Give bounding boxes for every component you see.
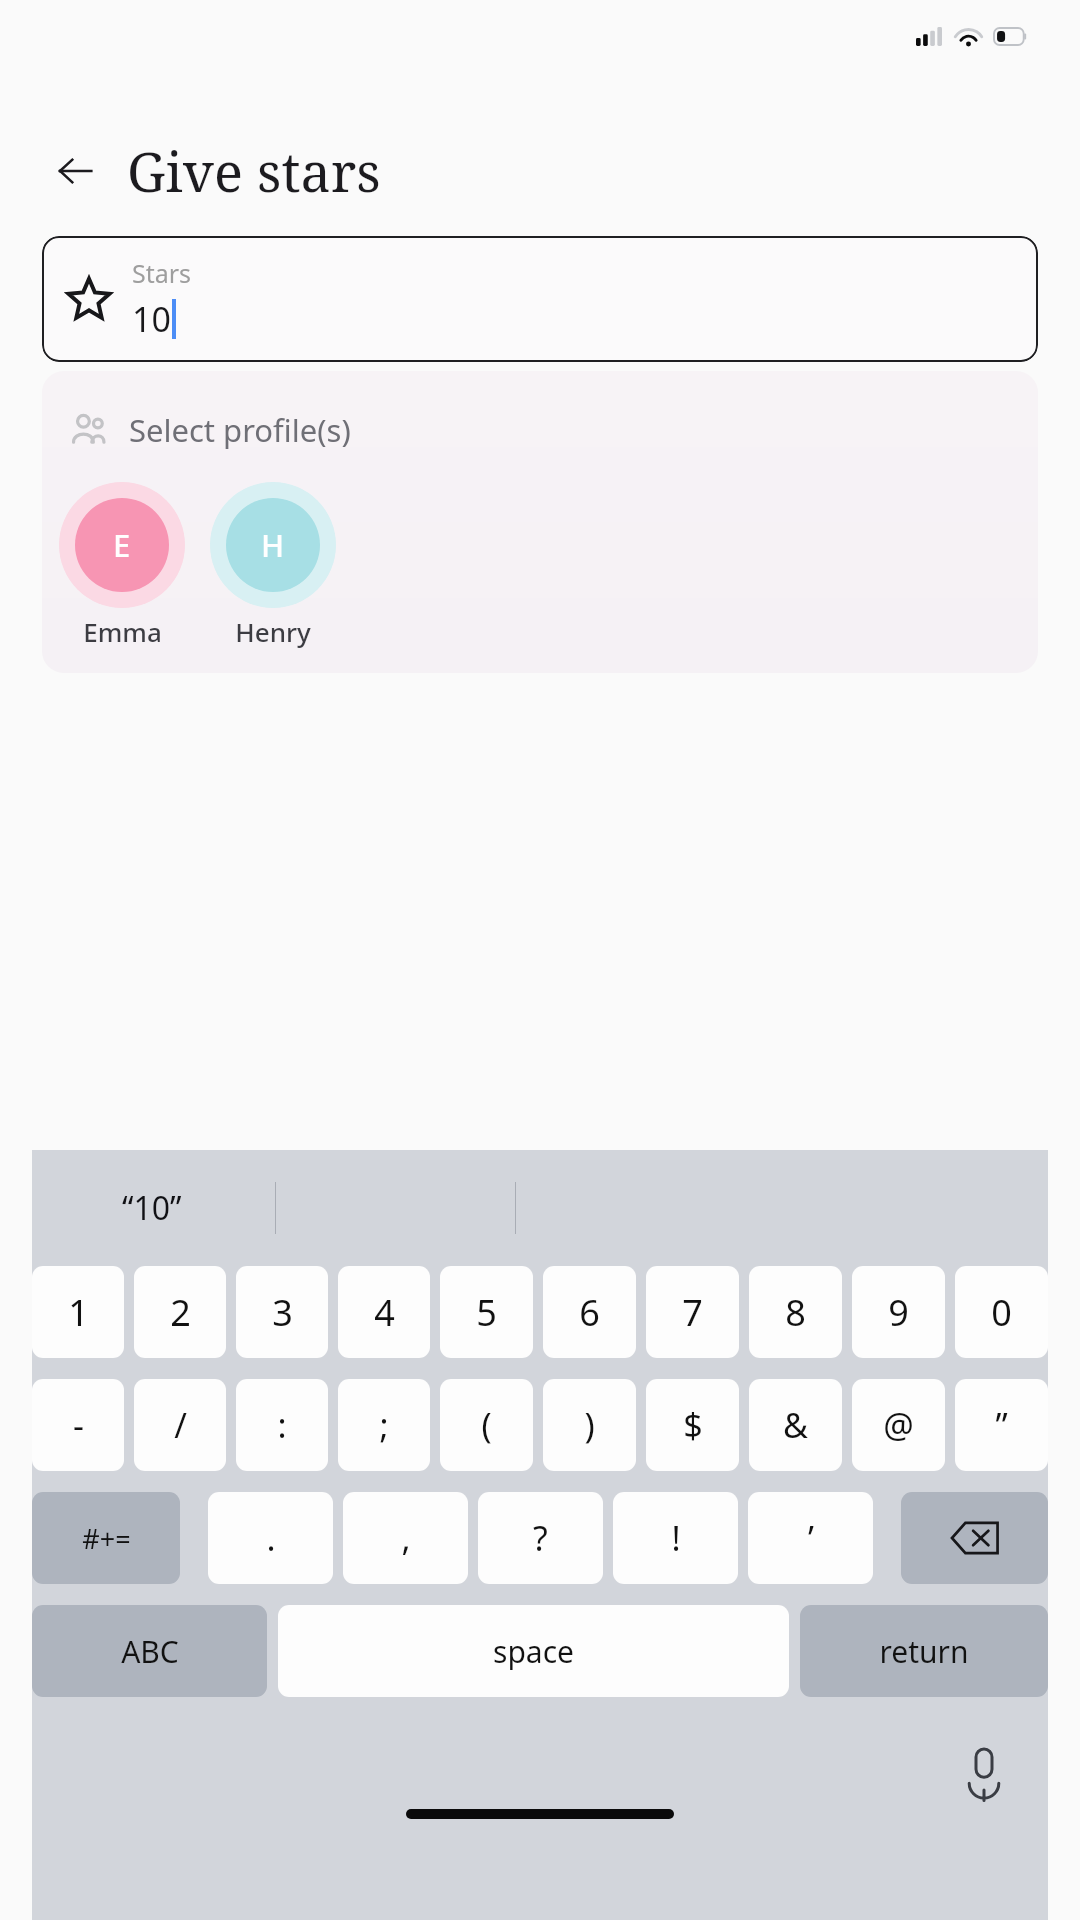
staticText: , (401, 1515, 411, 1561)
staticText: H (261, 524, 285, 566)
staticText: ’ (808, 1515, 814, 1561)
button[interactable]: 3 (236, 1266, 328, 1358)
staticText: E (113, 524, 131, 566)
staticText: 1 (68, 1288, 89, 1337)
staticText: / (174, 1402, 187, 1448)
button[interactable]: , (343, 1492, 468, 1584)
staticText: 6 (579, 1288, 600, 1337)
staticText: : (277, 1402, 287, 1448)
button[interactable]: - (32, 1379, 124, 1471)
button[interactable]: $ (646, 1379, 739, 1471)
button[interactable]: return (800, 1605, 1048, 1697)
button[interactable]: H (209, 480, 337, 651)
staticText: ) (584, 1402, 595, 1448)
staticText: @ (883, 1402, 914, 1448)
button[interactable]: Stars (42, 236, 1038, 362)
button[interactable]: ABC (32, 1605, 267, 1697)
staticText: Give stars (127, 134, 381, 208)
button[interactable]: ) (543, 1379, 636, 1471)
button[interactable]: : (236, 1379, 328, 1471)
button[interactable]: 0 (955, 1266, 1048, 1358)
staticText: . (266, 1515, 276, 1561)
staticText: ? (533, 1515, 548, 1561)
staticText: “10” (122, 1186, 182, 1230)
button[interactable]: ! (613, 1492, 738, 1584)
button[interactable]: ; (338, 1379, 430, 1471)
staticText: ! (671, 1515, 681, 1561)
button[interactable]: Back (44, 140, 106, 202)
staticText: 3 (272, 1288, 293, 1337)
button[interactable]: 6 (543, 1266, 636, 1358)
staticText: ; (379, 1402, 389, 1448)
button[interactable]: ’ (748, 1492, 873, 1584)
button[interactable]: ” (955, 1379, 1048, 1471)
button[interactable]: 1 (32, 1266, 124, 1358)
button[interactable]: 2 (134, 1266, 226, 1358)
staticText: ” (995, 1402, 1008, 1448)
staticText: Henry (235, 614, 311, 649)
button[interactable]: 8 (749, 1266, 842, 1358)
staticText: 4 (374, 1288, 395, 1337)
staticText: - (73, 1402, 84, 1448)
button[interactable]: 4 (338, 1266, 430, 1358)
button[interactable]: space (278, 1605, 789, 1697)
button[interactable]: E (58, 480, 186, 651)
staticText: $ (683, 1402, 703, 1448)
button[interactable]: #+= (32, 1492, 180, 1584)
staticText: Emma (83, 614, 162, 649)
button[interactable]: Dictate (952, 1743, 1016, 1807)
button[interactable]: 9 (852, 1266, 945, 1358)
staticText: 2 (170, 1288, 191, 1337)
staticText: Select profile(s) (129, 409, 351, 451)
staticText: 10 (132, 296, 171, 342)
staticText: return (879, 1631, 969, 1672)
staticText: 9 (888, 1288, 909, 1337)
staticText: & (783, 1402, 808, 1448)
button[interactable]: 5 (440, 1266, 533, 1358)
button[interactable]: & (749, 1379, 842, 1471)
staticText: Stars (132, 256, 192, 290)
staticText: 7 (682, 1288, 703, 1337)
staticText: 8 (785, 1288, 806, 1337)
button[interactable]: ? (478, 1492, 603, 1584)
button[interactable]: / (134, 1379, 226, 1471)
staticText: space (493, 1631, 574, 1672)
staticText: 0 (991, 1288, 1012, 1337)
button[interactable]: 7 (646, 1266, 739, 1358)
button[interactable]: Backspace (901, 1492, 1048, 1584)
staticText: #+= (82, 1520, 131, 1557)
button[interactable]: @ (852, 1379, 945, 1471)
staticText: 5 (476, 1288, 497, 1337)
button[interactable]: . (208, 1492, 333, 1584)
button[interactable]: ( (440, 1379, 533, 1471)
staticText: ABC (121, 1631, 179, 1672)
staticText: ( (481, 1402, 492, 1448)
